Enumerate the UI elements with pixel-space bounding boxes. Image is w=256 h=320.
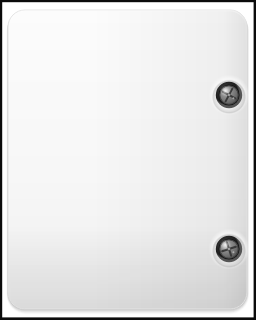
button[interactable]: White enclosure cover panel with two scr… [0, 0, 256, 320]
